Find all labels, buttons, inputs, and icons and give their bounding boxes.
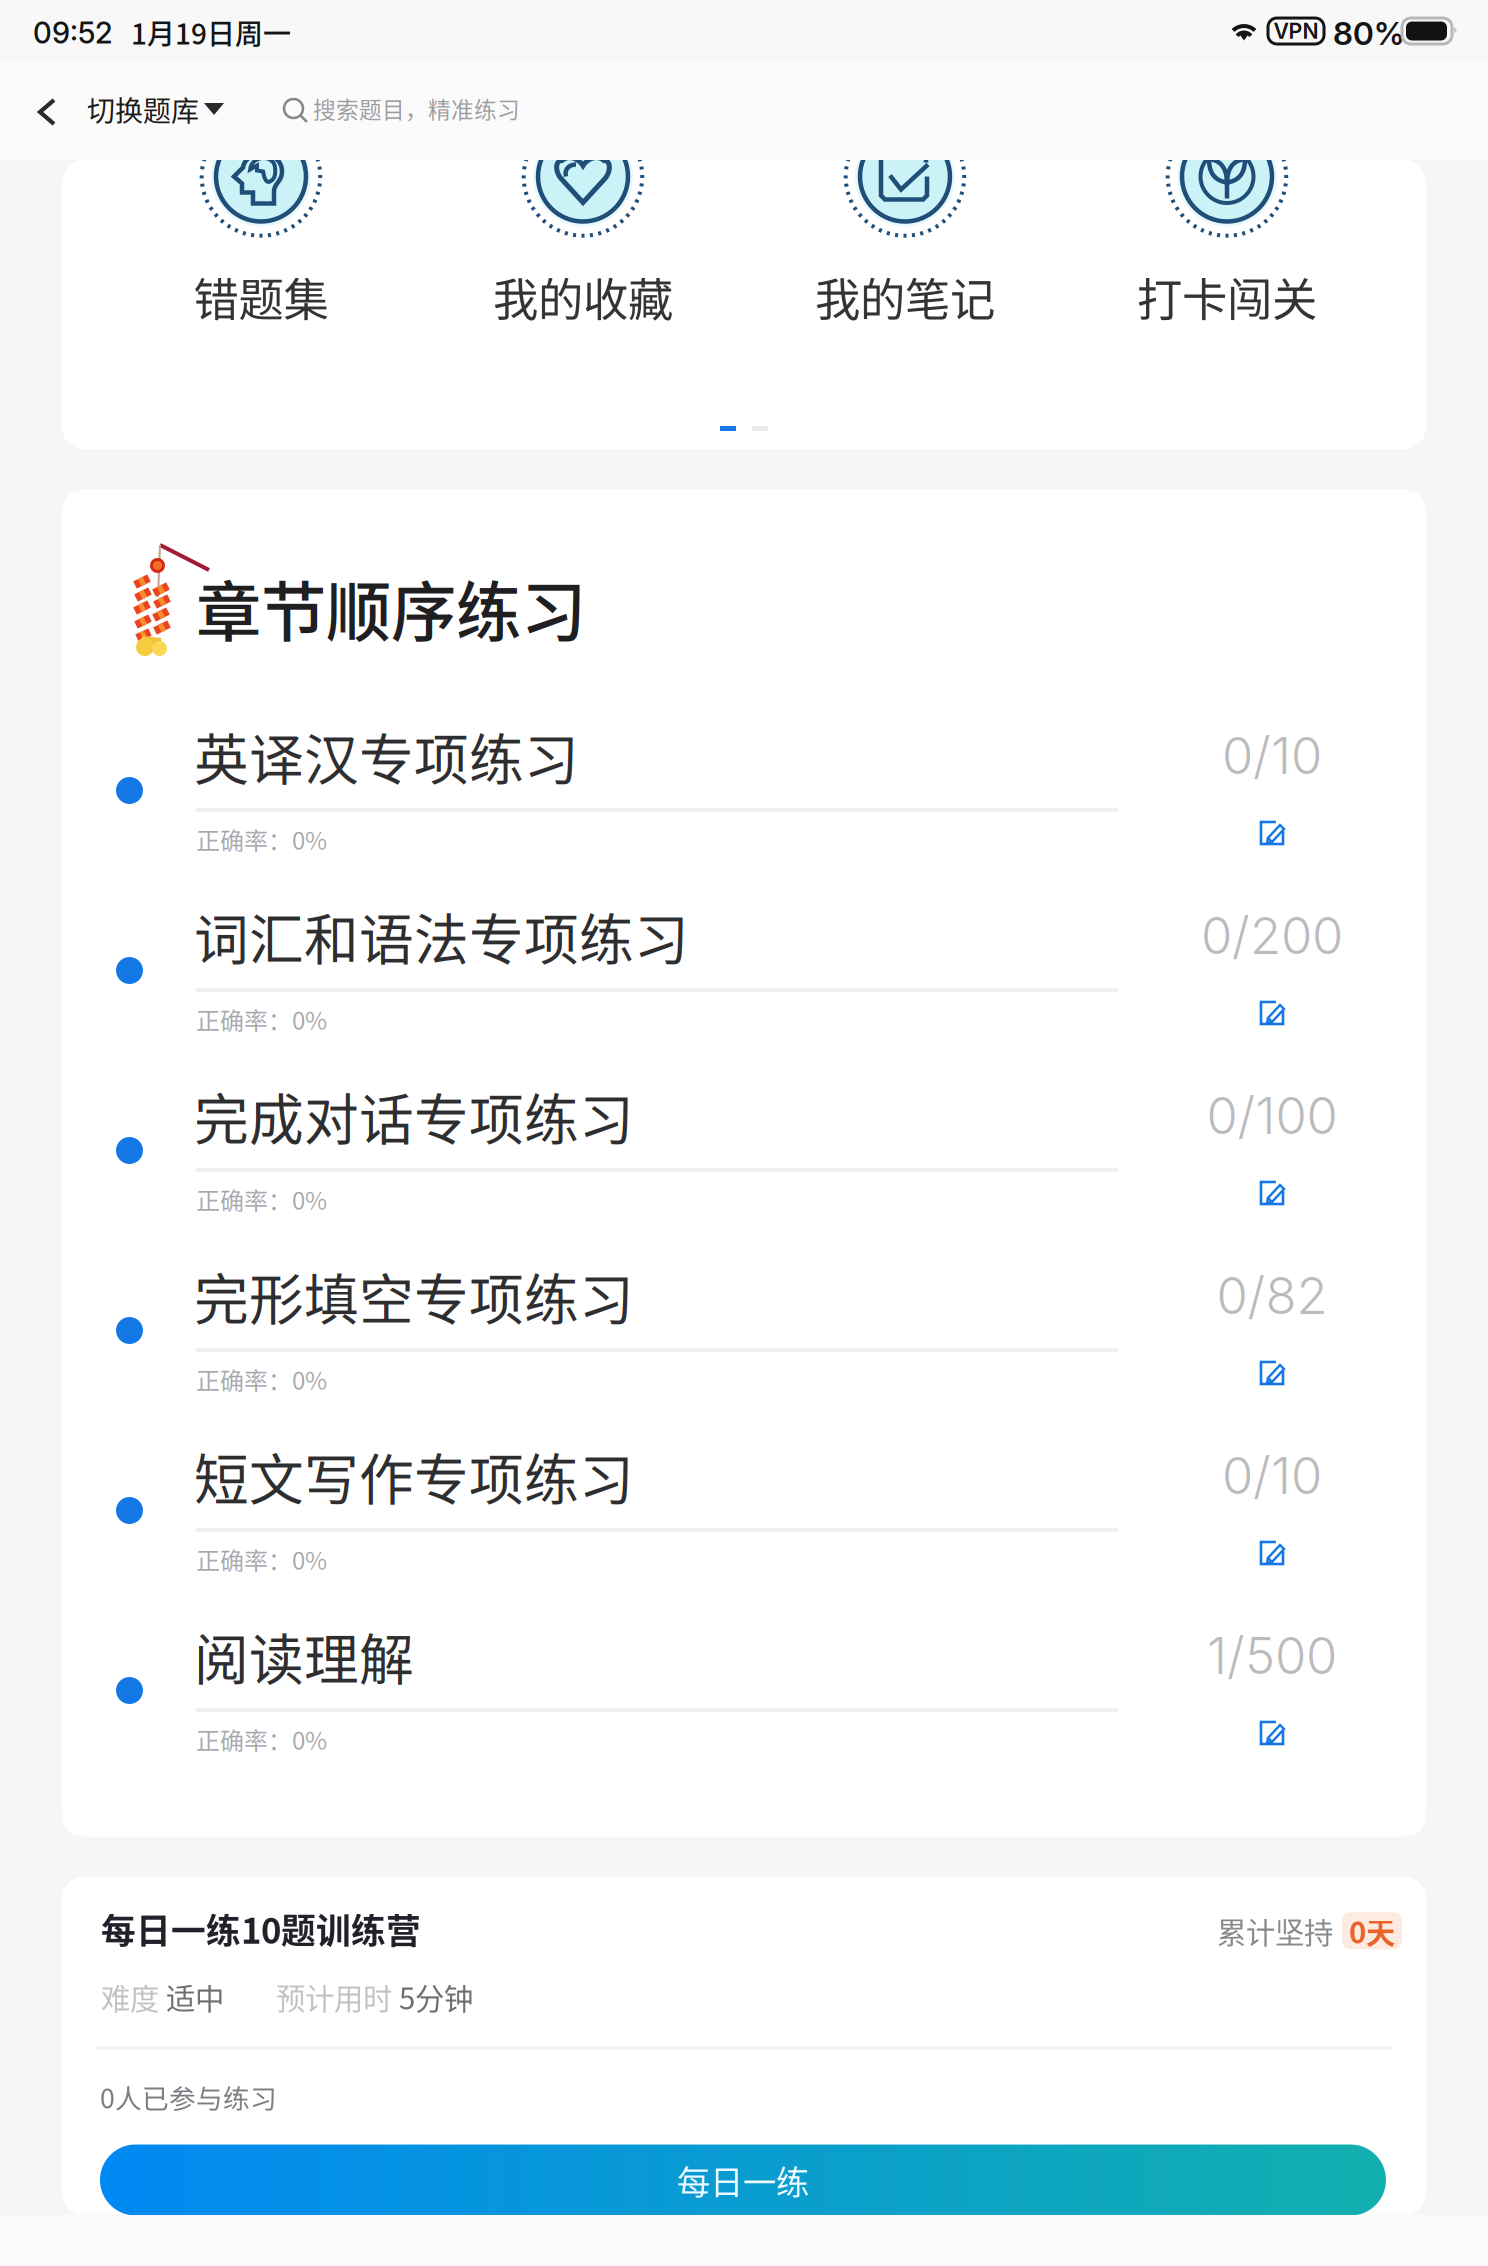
staticText: 正确率：0% bbox=[196, 1182, 327, 1217]
staticText: 适中 bbox=[166, 1975, 224, 2018]
staticText: 0/200 bbox=[1201, 905, 1343, 966]
staticText: 正确率：0% bbox=[196, 1542, 327, 1577]
button[interactable]: 切换题库 bbox=[0, 62, 240, 160]
button[interactable]: 每日一练 bbox=[62, 1876, 1386, 2215]
staticText: 完形填空专项练习 bbox=[194, 1256, 634, 1335]
button[interactable]: 我的收藏 bbox=[422, 160, 744, 449]
button[interactable]: 搜索题目，精准练习 bbox=[0, 62, 560, 160]
staticText: 1月19日周一 bbox=[131, 12, 291, 52]
button[interactable]: 阅读理解 bbox=[62, 1633, 1426, 1813]
staticText: 正确率：0% bbox=[196, 822, 327, 857]
staticText: 0/10 bbox=[1222, 1445, 1322, 1506]
staticText: 打卡闯关 bbox=[1137, 264, 1317, 330]
staticText: 完成对话专项练习 bbox=[194, 1076, 634, 1155]
staticText: 正确率：0% bbox=[196, 1722, 327, 1757]
staticText: 0/10 bbox=[1222, 725, 1322, 786]
button[interactable]: 错题集 bbox=[100, 160, 422, 449]
staticText: 80% bbox=[1333, 14, 1404, 53]
staticText: 我的笔记 bbox=[815, 264, 995, 330]
staticText: 1/500 bbox=[1207, 1625, 1337, 1686]
staticText: 英译汉专项练习 bbox=[194, 716, 579, 795]
staticText: 0人已参与练习 bbox=[100, 2077, 277, 2116]
staticText: 错题集 bbox=[193, 264, 328, 330]
button[interactable]: 短文写作专项练习 bbox=[62, 1453, 1426, 1633]
staticText: 难度 bbox=[101, 1975, 166, 2018]
staticText: 0/82 bbox=[1216, 1265, 1327, 1326]
staticText: 我的收藏 bbox=[493, 264, 673, 330]
button[interactable]: 打卡闯关 bbox=[1066, 160, 1388, 449]
button[interactable]: 完成对话专项练习 bbox=[62, 1093, 1426, 1273]
staticText: 章节顺序练习 bbox=[196, 560, 586, 655]
staticText: 累计坚持 bbox=[1217, 1909, 1333, 1952]
staticText: 0天 bbox=[1349, 1909, 1395, 1952]
button[interactable]: 我的笔记 bbox=[744, 160, 1066, 449]
staticText: VPN bbox=[1273, 18, 1318, 44]
button[interactable]: 英译汉专项练习 bbox=[62, 733, 1426, 913]
staticText: 0/100 bbox=[1206, 1085, 1337, 1146]
staticText: 每日一练10题训练营 bbox=[101, 1903, 421, 1954]
staticText: 搜索题目，精准练习 bbox=[313, 92, 520, 125]
staticText: 09:52 bbox=[33, 15, 113, 50]
staticText: 5分钟 bbox=[399, 1975, 473, 2018]
button[interactable]: Back bbox=[0, 62, 83, 148]
button[interactable]: 词汇和语法专项练习 bbox=[62, 913, 1426, 1093]
staticText: 正确率：0% bbox=[196, 1362, 327, 1397]
staticText: 正确率：0% bbox=[196, 1002, 327, 1037]
button[interactable]: 完形填空专项练习 bbox=[62, 1273, 1426, 1453]
staticText: 每日一练 bbox=[677, 2156, 809, 2204]
staticText: 词汇和语法专项练习 bbox=[194, 896, 689, 975]
staticText: 切换题库 bbox=[87, 89, 199, 129]
staticText: 预计用时 bbox=[276, 1975, 399, 2018]
staticText: 阅读理解 bbox=[194, 1616, 414, 1695]
staticText: 短文写作专项练习 bbox=[194, 1436, 634, 1515]
